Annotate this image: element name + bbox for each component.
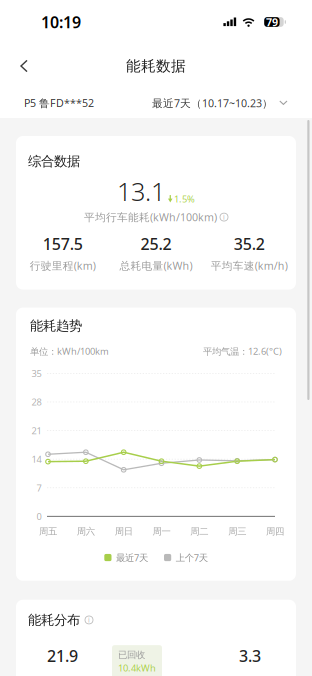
staticText: 21.9 [47, 645, 78, 666]
staticText: 周日 [115, 526, 133, 537]
staticText: 周六 [77, 526, 95, 537]
staticText: 10.4kWh [118, 662, 156, 674]
staticText: 总耗电量(kWh) [119, 258, 192, 273]
button[interactable]: 返回 [0, 51, 48, 81]
staticText: 35 [31, 367, 41, 380]
staticText: 周五 [39, 526, 57, 537]
staticText: 平均气温：12.6(°C) [203, 345, 282, 357]
staticText: 21 [31, 424, 41, 437]
staticText: 35.2 [234, 233, 265, 254]
staticText: 能耗数据 [126, 57, 186, 75]
staticText: 平均行车能耗(kWh/100km) [84, 210, 217, 224]
staticText: 3.3 [239, 645, 261, 666]
staticText: i [223, 213, 225, 222]
staticText: 7 [36, 482, 41, 494]
staticText: i [88, 615, 90, 624]
staticText: 最近7天 [116, 551, 148, 564]
staticText: 行驶里程(km) [30, 258, 96, 273]
staticText: 79 [266, 15, 278, 29]
staticText: 周三 [228, 526, 246, 537]
staticText: 10:19 [41, 11, 81, 33]
staticText: 14 [31, 453, 41, 465]
staticText: 上个7天 [176, 551, 208, 564]
staticText: 1.5% [174, 193, 195, 205]
staticText: 25.2 [140, 233, 171, 254]
staticText: 能耗趋势 [30, 318, 82, 334]
staticText: 周二 [190, 526, 208, 537]
staticText: 单位：kWh/100km [30, 345, 109, 357]
staticText: P5 鲁FD***52 [24, 96, 94, 110]
staticText: 周四 [266, 526, 284, 537]
staticText: 157.5 [43, 233, 83, 254]
staticText: 能耗分布 [28, 612, 80, 628]
button[interactable]: 最近7天（10.17~10.23） [152, 91, 312, 115]
staticText: 最近7天（10.17~10.23） [152, 96, 273, 110]
staticText: 13.1 [117, 174, 165, 208]
button[interactable]: P5 鲁FD***52 [0, 91, 94, 115]
staticText: 28 [31, 396, 41, 408]
staticText: 周一 [152, 526, 170, 537]
staticText: 综合数据 [28, 153, 80, 169]
staticText: 平均车速(km/h) [211, 258, 288, 273]
staticText: 0 [36, 510, 41, 523]
staticText: 已回收 [118, 649, 145, 661]
